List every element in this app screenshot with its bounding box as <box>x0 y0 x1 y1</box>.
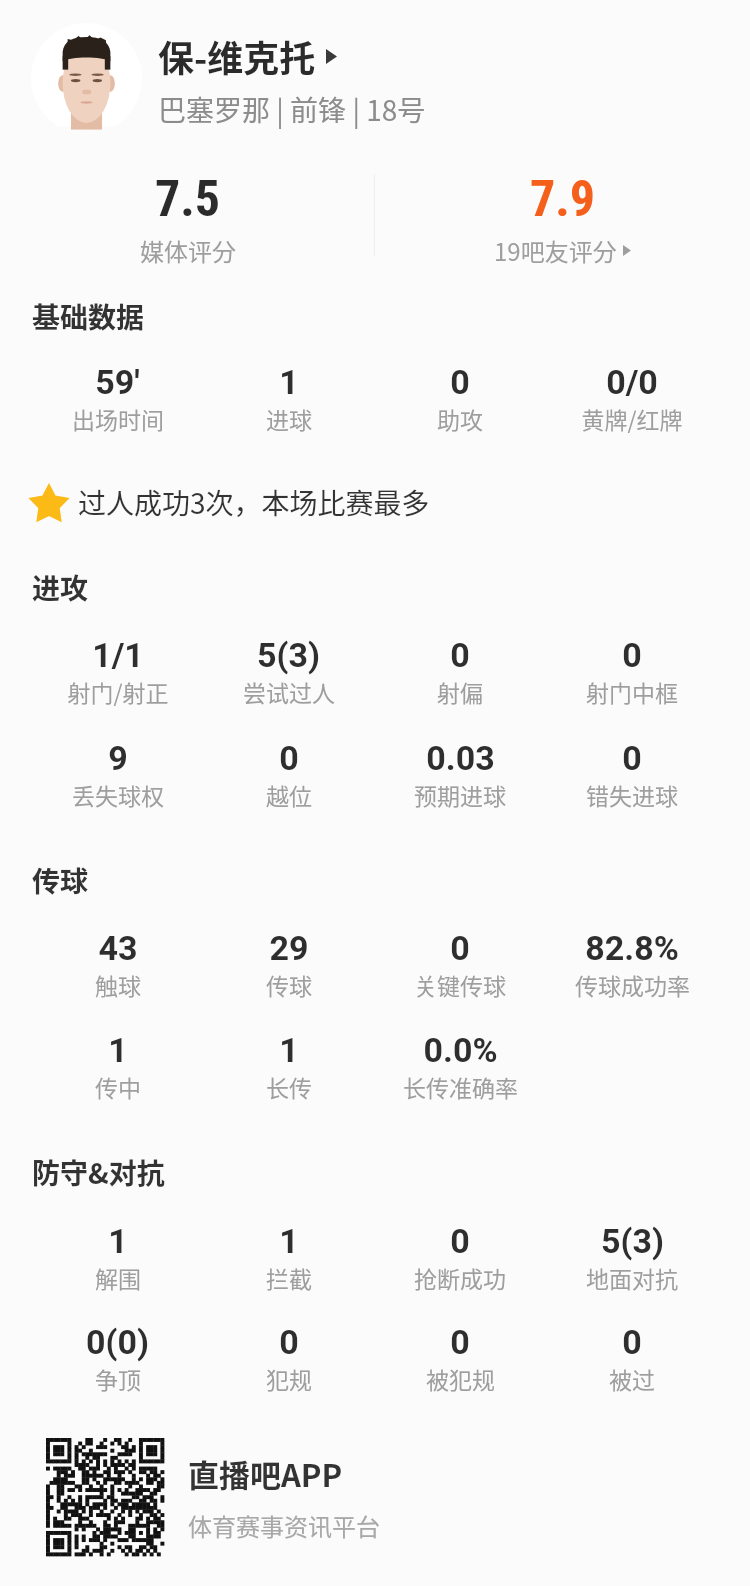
staticText: 传中 <box>95 1070 141 1103</box>
staticText: 触球 <box>95 968 141 1001</box>
button[interactable]: 1 <box>32 1221 203 1294</box>
staticText: 1 <box>279 1030 299 1070</box>
staticText: 助攻 <box>437 402 483 435</box>
button[interactable]: 0 <box>374 1322 546 1395</box>
button[interactable]: 7.5 <box>0 170 375 268</box>
button[interactable]: 0 <box>374 362 546 435</box>
staticText: 预期进球 <box>414 778 506 811</box>
staticText: 0 <box>450 1322 470 1362</box>
staticText: 黄牌/红牌 <box>581 402 683 435</box>
staticText: 越位 <box>266 778 312 811</box>
staticText: 被犯规 <box>426 1362 495 1395</box>
staticText: 82.8% <box>585 928 679 968</box>
staticText: 0 <box>450 635 470 675</box>
button[interactable]: 0 <box>374 635 546 708</box>
staticText: 解围 <box>95 1261 141 1294</box>
staticText: 关键传球 <box>414 968 506 1001</box>
button[interactable]: 1 <box>203 362 374 435</box>
button[interactable]: Player photo <box>31 23 142 134</box>
staticText: 射门/射正 <box>67 675 169 708</box>
staticText: 59' <box>95 362 140 402</box>
staticText: 错失进球 <box>586 778 678 811</box>
staticText: 被过 <box>609 1362 655 1395</box>
staticText: 保-维克托 <box>158 30 316 82</box>
staticText: 巴塞罗那 | 前锋 | 18号 <box>158 89 426 130</box>
button[interactable]: 5(3) <box>203 635 374 708</box>
staticText: 29 <box>269 928 309 968</box>
button[interactable]: 0/0 <box>546 362 718 435</box>
staticText: 长传准确率 <box>403 1070 518 1103</box>
staticText: 传球 <box>32 860 89 901</box>
button[interactable]: 直播吧APP <box>188 1451 380 1543</box>
staticText: 过人成功3次，本场比赛最多 <box>78 482 430 523</box>
staticText: 1 <box>279 362 299 402</box>
staticText: 进攻 <box>32 567 89 608</box>
button[interactable]: 0 <box>203 1322 374 1395</box>
button[interactable]: 1 <box>203 1030 374 1103</box>
staticText: 0 <box>622 635 642 675</box>
staticText: 体育赛事资讯平台 <box>188 1508 380 1543</box>
staticText: 0 <box>279 1322 299 1362</box>
staticText: 0/0 <box>606 362 658 402</box>
staticText: 尝试过人 <box>243 675 335 708</box>
button[interactable]: 0.03 <box>374 738 546 811</box>
staticText: 传球 <box>266 968 312 1001</box>
staticText: 0 <box>279 738 299 778</box>
staticText: 出场时间 <box>72 402 164 435</box>
staticText: 拦截 <box>266 1261 312 1294</box>
staticText: 0 <box>622 738 642 778</box>
button[interactable]: QR code to download app <box>46 1438 164 1556</box>
staticText: 抢断成功 <box>414 1261 506 1294</box>
button[interactable]: 1/1 <box>32 635 203 708</box>
staticText: 长传 <box>266 1070 312 1103</box>
button[interactable]: 0 <box>203 738 374 811</box>
staticText: 0(0) <box>86 1322 149 1362</box>
staticText: 7.9 <box>530 170 596 229</box>
staticText: 43 <box>98 928 138 968</box>
button[interactable]: 82.8% <box>546 928 718 1001</box>
button[interactable]: 0 <box>546 1322 718 1395</box>
button[interactable]: 0.0% <box>374 1030 546 1103</box>
staticText: 0.0% <box>423 1030 498 1070</box>
staticText: 传球成功率 <box>575 968 690 1001</box>
button[interactable]: 29 <box>203 928 374 1001</box>
staticText: 射偏 <box>437 675 483 708</box>
staticText: 19吧友评分 <box>494 233 617 268</box>
button[interactable]: 0(0) <box>32 1322 203 1395</box>
button[interactable]: 5(3) <box>546 1221 718 1294</box>
button[interactable]: 9 <box>32 738 203 811</box>
button[interactable]: 43 <box>32 928 203 1001</box>
staticText: 射门中框 <box>586 675 678 708</box>
button[interactable]: 保-维克托 <box>158 30 337 82</box>
staticText: 1 <box>279 1221 299 1261</box>
staticText: 0 <box>450 1221 470 1261</box>
button[interactable]: 0 <box>374 928 546 1001</box>
button[interactable]: 0 <box>546 738 718 811</box>
staticText: 丢失球权 <box>72 778 164 811</box>
staticText: 犯规 <box>266 1362 312 1395</box>
staticText: 0 <box>450 928 470 968</box>
staticText: 0.03 <box>426 738 495 778</box>
staticText: 5(3) <box>601 1221 664 1261</box>
button[interactable]: 0 <box>546 635 718 708</box>
staticText: 0 <box>450 362 470 402</box>
staticText: 进球 <box>266 402 312 435</box>
staticText: 基础数据 <box>32 296 145 337</box>
staticText: 媒体评分 <box>140 233 236 268</box>
other: Player detail <box>326 49 337 64</box>
staticText: 1 <box>108 1221 128 1261</box>
staticText: 1/1 <box>92 635 144 675</box>
button[interactable]: 0 <box>374 1221 546 1294</box>
staticText: 7.5 <box>155 170 221 229</box>
staticText: 0 <box>622 1322 642 1362</box>
staticText: 防守&对抗 <box>32 1152 165 1193</box>
staticText: 直播吧APP <box>188 1451 343 1496</box>
staticText: 1 <box>108 1030 128 1070</box>
button[interactable]: 1 <box>203 1221 374 1294</box>
button[interactable]: 59' <box>32 362 203 435</box>
button[interactable]: 1 <box>32 1030 203 1103</box>
staticText: 争顶 <box>95 1362 141 1395</box>
button[interactable]: 过人成功3次，本场比赛最多 <box>30 482 750 523</box>
staticText: 地面对抗 <box>586 1261 678 1294</box>
button[interactable]: 7.9 <box>375 170 750 268</box>
